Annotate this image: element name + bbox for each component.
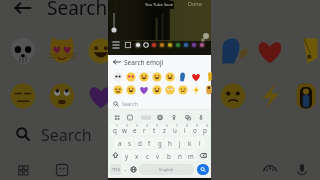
staticText: b	[167, 152, 171, 160]
staticText: Done	[188, 0, 202, 7]
staticText: t	[153, 126, 156, 134]
button[interactable]: ,	[122, 164, 129, 175]
button[interactable]: Search	[197, 164, 209, 175]
staticText: s	[128, 139, 131, 147]
staticText: 5	[156, 124, 158, 128]
staticText: Search	[122, 101, 138, 108]
staticText: f	[148, 139, 151, 147]
staticText: 8	[186, 124, 188, 128]
staticText: n	[178, 152, 182, 160]
staticText: 6	[166, 124, 168, 128]
staticText: i	[184, 126, 186, 134]
button[interactable]: 5	[150, 124, 159, 135]
button[interactable]: f	[145, 137, 154, 148]
button[interactable]: Search	[108, 97, 211, 110]
staticText: d	[138, 139, 142, 147]
staticText: 4	[146, 124, 148, 128]
staticText: l	[199, 139, 201, 147]
button[interactable]: v	[153, 150, 163, 161]
button[interactable]: g	[155, 137, 164, 148]
staticText: v	[156, 152, 160, 160]
staticText: y	[125, 152, 129, 160]
button[interactable]: k	[185, 137, 194, 148]
staticText: k	[188, 139, 192, 147]
staticText: c	[146, 152, 149, 160]
staticText: 0	[206, 124, 208, 128]
staticText: w	[122, 126, 127, 134]
staticText: m	[188, 152, 194, 160]
staticText: x	[135, 152, 139, 160]
staticText: a	[118, 139, 122, 147]
button[interactable]: 6	[160, 124, 169, 135]
button[interactable]: y	[122, 150, 131, 161]
staticText: q	[113, 126, 117, 134]
button[interactable]: ?123	[110, 164, 121, 175]
staticText: g	[158, 139, 162, 147]
staticText: ?123	[112, 167, 120, 172]
staticText: Search e	[47, 0, 123, 21]
staticText: 7	[176, 124, 178, 128]
button[interactable]: c	[142, 150, 152, 161]
button[interactable]: j	[175, 137, 184, 148]
button[interactable]: 8	[180, 124, 189, 135]
button[interactable]: Change language	[129, 164, 138, 175]
staticText: h	[168, 139, 172, 147]
button[interactable]: 1	[110, 124, 119, 135]
button[interactable]: n	[175, 150, 185, 161]
button[interactable]: 2	[120, 124, 129, 135]
button[interactable]: 7	[170, 124, 179, 135]
staticText: Search	[41, 124, 92, 146]
staticText: ,	[125, 165, 127, 173]
button[interactable]: a	[115, 137, 124, 148]
staticText: 2	[126, 124, 128, 128]
button[interactable]: b	[164, 150, 174, 161]
staticText: 1	[116, 124, 118, 128]
button[interactable]: 0	[200, 124, 209, 135]
button[interactable]: Backspace	[197, 150, 209, 161]
staticText: r	[143, 126, 146, 134]
staticText: English	[159, 167, 174, 173]
staticText: u	[173, 126, 177, 134]
staticText: z	[163, 126, 166, 134]
staticText: 3	[136, 124, 138, 128]
button[interactable]: Shift	[110, 150, 121, 161]
button[interactable]: s	[125, 137, 134, 148]
button[interactable]: English	[139, 164, 194, 175]
staticText: p	[203, 126, 207, 134]
staticText: 9	[196, 124, 198, 128]
staticText: You Tube Save	[144, 2, 174, 8]
button[interactable]: 9	[190, 124, 199, 135]
button[interactable]: x	[132, 150, 141, 161]
button[interactable]: d	[135, 137, 144, 148]
button[interactable]: m	[186, 150, 196, 161]
button[interactable]: 4	[140, 124, 149, 135]
button[interactable]: h	[165, 137, 174, 148]
staticText: Search emoji	[124, 58, 164, 67]
staticText: j	[179, 139, 181, 147]
button[interactable]: l	[195, 137, 204, 148]
staticText: o	[193, 126, 197, 134]
button[interactable]: 3	[130, 124, 139, 135]
staticText: e	[133, 126, 137, 134]
